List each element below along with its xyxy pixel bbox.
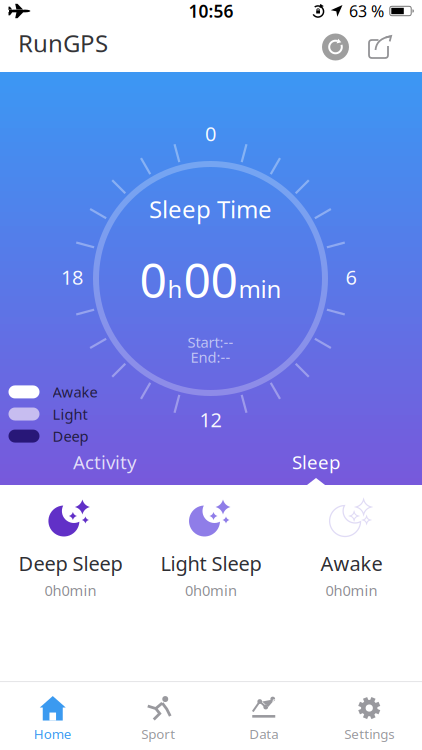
button[interactable]: Deep Sleep xyxy=(0,485,141,600)
staticText: Light xyxy=(52,404,87,424)
button[interactable]: Awake xyxy=(281,485,422,600)
staticText: Deep xyxy=(52,426,88,446)
staticText: 6 xyxy=(345,264,356,290)
button[interactable]: Activity xyxy=(30,447,180,477)
staticText: 18 xyxy=(61,264,83,290)
button[interactable] xyxy=(366,33,394,61)
staticText: Data xyxy=(249,725,278,743)
button[interactable]: Home xyxy=(0,695,105,743)
button[interactable]: Sport xyxy=(105,695,211,743)
button[interactable]: Data xyxy=(211,695,316,743)
staticText: RunGPS xyxy=(18,27,108,59)
staticText: 0 xyxy=(205,120,216,147)
staticText: 12 xyxy=(199,406,221,433)
staticText: min xyxy=(238,273,281,305)
staticText: 10:56 xyxy=(188,0,233,22)
staticText: 0h0min xyxy=(185,581,237,600)
staticText: Deep Sleep xyxy=(18,550,122,577)
button[interactable] xyxy=(322,33,349,60)
staticText: Sleep Time xyxy=(149,193,272,225)
staticText: Awake xyxy=(321,550,383,577)
button[interactable]: Settings xyxy=(316,695,422,743)
staticText: End:-- xyxy=(190,347,230,367)
staticText: Light Sleep xyxy=(160,550,261,577)
staticText: 0h0min xyxy=(44,581,96,600)
staticText: 0 xyxy=(139,248,166,311)
staticText: Start:-- xyxy=(187,332,233,352)
staticText: 0h0min xyxy=(326,581,378,600)
staticText: Settings xyxy=(344,725,394,743)
staticText: 63 % xyxy=(349,0,384,22)
staticText: h xyxy=(167,273,182,305)
staticText: 00 xyxy=(183,248,237,311)
staticText: Activity xyxy=(73,450,137,474)
button[interactable]: Light Sleep xyxy=(141,485,281,600)
staticText: Awake xyxy=(52,382,97,402)
staticText: Sport xyxy=(141,725,175,743)
staticText: Home xyxy=(34,725,72,743)
staticText: Sleep xyxy=(292,450,340,474)
button[interactable]: Sleep xyxy=(241,447,391,477)
